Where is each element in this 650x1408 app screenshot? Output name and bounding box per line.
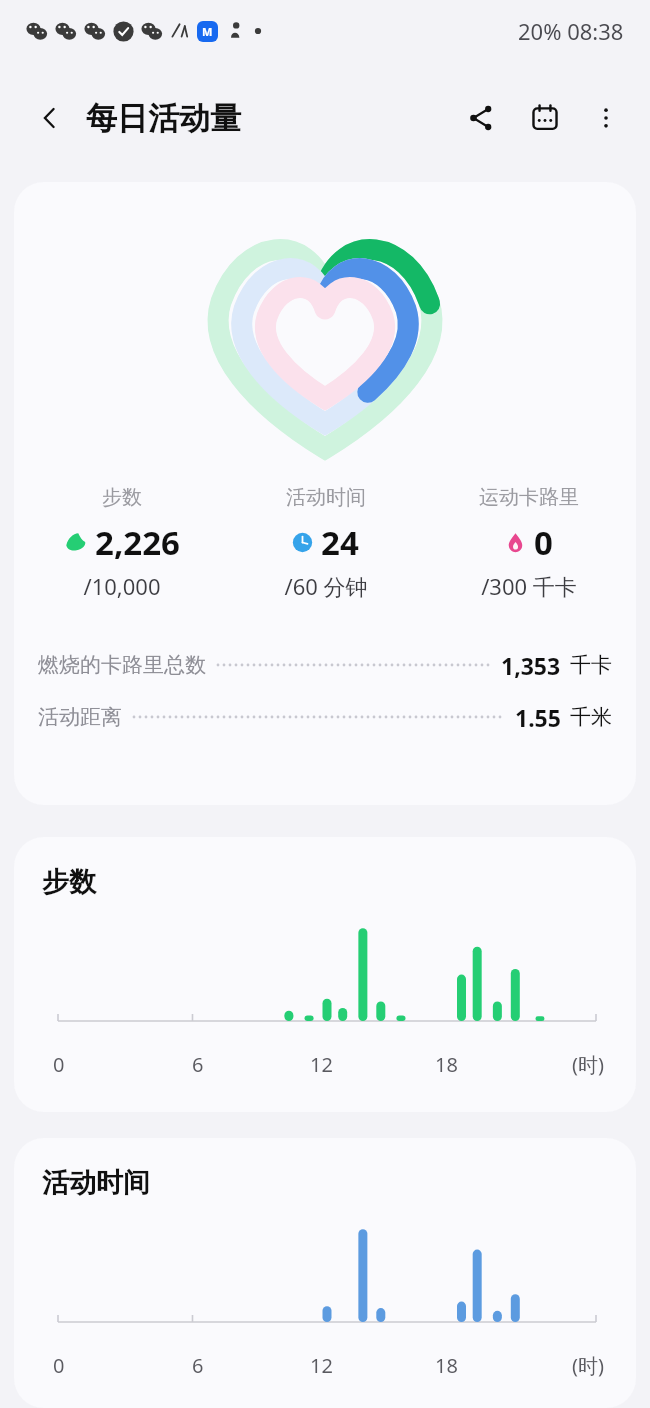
staticText: 千米 <box>570 704 612 730</box>
button[interactable]: 步数 <box>14 182 636 805</box>
button[interactable]: 步数 <box>14 837 636 1112</box>
staticText: /10,000 <box>83 571 161 601</box>
staticText: 0 <box>53 1051 65 1078</box>
staticText: 6 <box>192 1352 204 1379</box>
staticText: 活动距离 <box>38 704 122 730</box>
button[interactable]: Back <box>28 96 72 140</box>
staticText: 18 <box>435 1051 458 1078</box>
staticText: 活动时间 <box>286 485 366 510</box>
staticText: 活动时间 <box>42 1166 150 1200</box>
staticText: 运动卡路里 <box>479 485 579 510</box>
staticText: 24 <box>321 520 359 565</box>
staticText: 1,353 <box>501 650 561 681</box>
button[interactable]: 活动时间 <box>14 1138 636 1408</box>
button[interactable]: Share <box>458 95 504 141</box>
staticText: 步数 <box>42 865 96 899</box>
button[interactable]: 步数 <box>20 481 224 605</box>
button[interactable]: More options <box>584 96 628 140</box>
staticText: 1.55 <box>515 702 561 733</box>
staticText: (时) <box>572 1051 604 1078</box>
staticText: 6 <box>192 1051 204 1078</box>
staticText: 每日活动量 <box>86 99 241 138</box>
button[interactable]: Calendar <box>522 95 568 141</box>
staticText: (时) <box>572 1352 604 1379</box>
staticText: 步数 <box>102 485 142 510</box>
staticText: 千卡 <box>570 652 612 678</box>
staticText: 20% 08:38 <box>518 16 624 46</box>
staticText: /300 千卡 <box>481 571 577 601</box>
button[interactable]: 运动卡路里 <box>427 481 630 605</box>
button[interactable]: 活动时间 <box>224 481 427 605</box>
staticText: 2,226 <box>95 520 180 565</box>
staticText: 0 <box>534 520 553 565</box>
staticText: 18 <box>435 1352 458 1379</box>
staticText: /60 分钟 <box>284 571 368 601</box>
staticText: 12 <box>310 1051 333 1078</box>
button[interactable]: 活动距离 <box>38 699 612 735</box>
staticText: 12 <box>310 1352 333 1379</box>
staticText: 0 <box>53 1352 65 1379</box>
staticText: M <box>202 24 213 39</box>
button[interactable]: 燃烧的卡路里总数 <box>38 647 612 683</box>
staticText: 燃烧的卡路里总数 <box>38 652 206 678</box>
